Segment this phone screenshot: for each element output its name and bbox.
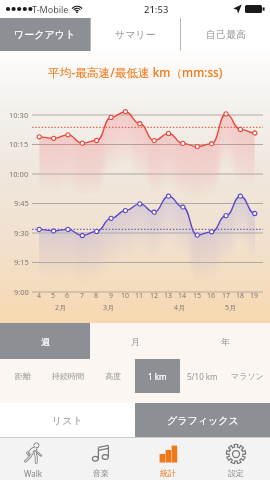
staticText: 2月 xyxy=(55,303,67,313)
staticText: 年 xyxy=(221,336,230,347)
button[interactable]: 5/10 km xyxy=(180,359,225,393)
staticText: 高度 xyxy=(105,371,121,381)
staticText: 1 km xyxy=(148,371,167,382)
button[interactable]: 1 km xyxy=(135,359,180,393)
staticText: 21:53 xyxy=(144,3,169,16)
staticText: 14 xyxy=(178,291,187,301)
staticText: 平均-最高速/最低速 km（mm:ss) xyxy=(48,64,223,80)
button[interactable]: サマリー xyxy=(91,18,180,51)
staticText: 9:45 xyxy=(14,198,29,208)
staticText: 4月 xyxy=(174,303,186,313)
button[interactable]: Settings xyxy=(202,437,270,480)
staticText: 統計 xyxy=(160,468,176,478)
button[interactable]: ワークアウト xyxy=(0,18,90,51)
staticText: T-Mobile xyxy=(32,3,69,15)
staticText: 16 xyxy=(207,291,216,301)
button[interactable]: グラフィックス xyxy=(135,403,270,437)
staticText: 9:00 xyxy=(14,287,29,297)
button[interactable]: Statistics xyxy=(134,437,202,480)
staticText: 8 xyxy=(94,291,99,301)
button[interactable]: 週 xyxy=(0,323,90,359)
staticText: 5 xyxy=(51,291,56,301)
staticText: 19 xyxy=(250,291,259,301)
staticText: 自己最高 xyxy=(206,28,246,41)
button[interactable]: 距離 xyxy=(0,359,45,393)
button[interactable]: リスト xyxy=(0,403,135,437)
staticText: マラソン xyxy=(231,371,264,381)
staticText: 5月 xyxy=(225,303,237,313)
staticText: 10:00 xyxy=(9,169,29,179)
staticText: 5/10 km xyxy=(187,371,218,382)
staticText: 7 xyxy=(80,291,85,301)
button[interactable]: 年 xyxy=(180,323,270,359)
staticText: 9:30 xyxy=(14,228,29,238)
staticText: ワークアウト xyxy=(14,28,76,41)
staticText: リスト xyxy=(52,414,83,427)
staticText: Walk xyxy=(24,468,43,479)
staticText: 音楽 xyxy=(93,468,109,478)
staticText: 9 xyxy=(109,291,114,301)
staticText: 13 xyxy=(164,291,173,301)
button[interactable]: 月 xyxy=(90,323,180,359)
staticText: 10:30 xyxy=(9,110,29,120)
staticText: 週 xyxy=(41,336,50,347)
staticText: 15 xyxy=(193,291,202,301)
staticText: 10:15 xyxy=(9,139,29,149)
button[interactable]: マラソン xyxy=(225,359,270,393)
staticText: 12 xyxy=(150,291,159,301)
button[interactable]: 持続時間 xyxy=(45,359,90,393)
button[interactable]: 自己最高 xyxy=(181,18,270,51)
staticText: 6 xyxy=(65,291,70,301)
staticText: サマリー xyxy=(115,28,156,41)
staticText: 18 xyxy=(236,291,245,301)
button[interactable]: Music xyxy=(67,437,134,480)
staticText: 17 xyxy=(222,291,231,301)
staticText: 距離 xyxy=(15,371,31,381)
staticText: 3月 xyxy=(103,303,115,313)
button[interactable]: 高度 xyxy=(90,359,135,393)
button[interactable]: Walk xyxy=(0,437,67,480)
staticText: グラフィックス xyxy=(167,414,239,427)
staticText: 4 xyxy=(37,291,42,301)
staticText: 月 xyxy=(131,336,140,347)
staticText: 10 xyxy=(121,291,130,301)
staticText: 11 xyxy=(135,291,144,301)
staticText: 持続時間 xyxy=(52,371,84,381)
staticText: 9:15 xyxy=(14,257,29,267)
staticText: 設定 xyxy=(228,468,244,478)
